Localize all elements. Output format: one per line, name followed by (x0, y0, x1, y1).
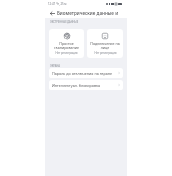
staticText: Интеллектуал. блокировка (52, 83, 101, 88)
staticText: Биометрические данные и пароль (57, 10, 127, 16)
staticText: Пароль до отключения на экране (52, 71, 113, 76)
staticText: ЭКРАНА (50, 64, 60, 67)
staticText: Подключение на лице (90, 41, 120, 50)
button[interactable]: Простое сканирование (49, 29, 84, 58)
button[interactable]: Back (48, 9, 56, 17)
staticText: Простое сканирование (54, 41, 79, 50)
button[interactable]: Пароль до отключения на экране (49, 68, 123, 78)
button[interactable]: Интеллектуал. блокировка (49, 80, 123, 90)
staticText: 12:47 Чт, 25 м (48, 2, 67, 6)
staticText: ЭКСТРЕННЫЕ ДАННЫЕ (50, 20, 79, 23)
staticText: Нет регистрации (55, 51, 78, 55)
button[interactable]: Подключение на лице (87, 29, 123, 58)
staticText: Нет регистрации (94, 51, 117, 55)
